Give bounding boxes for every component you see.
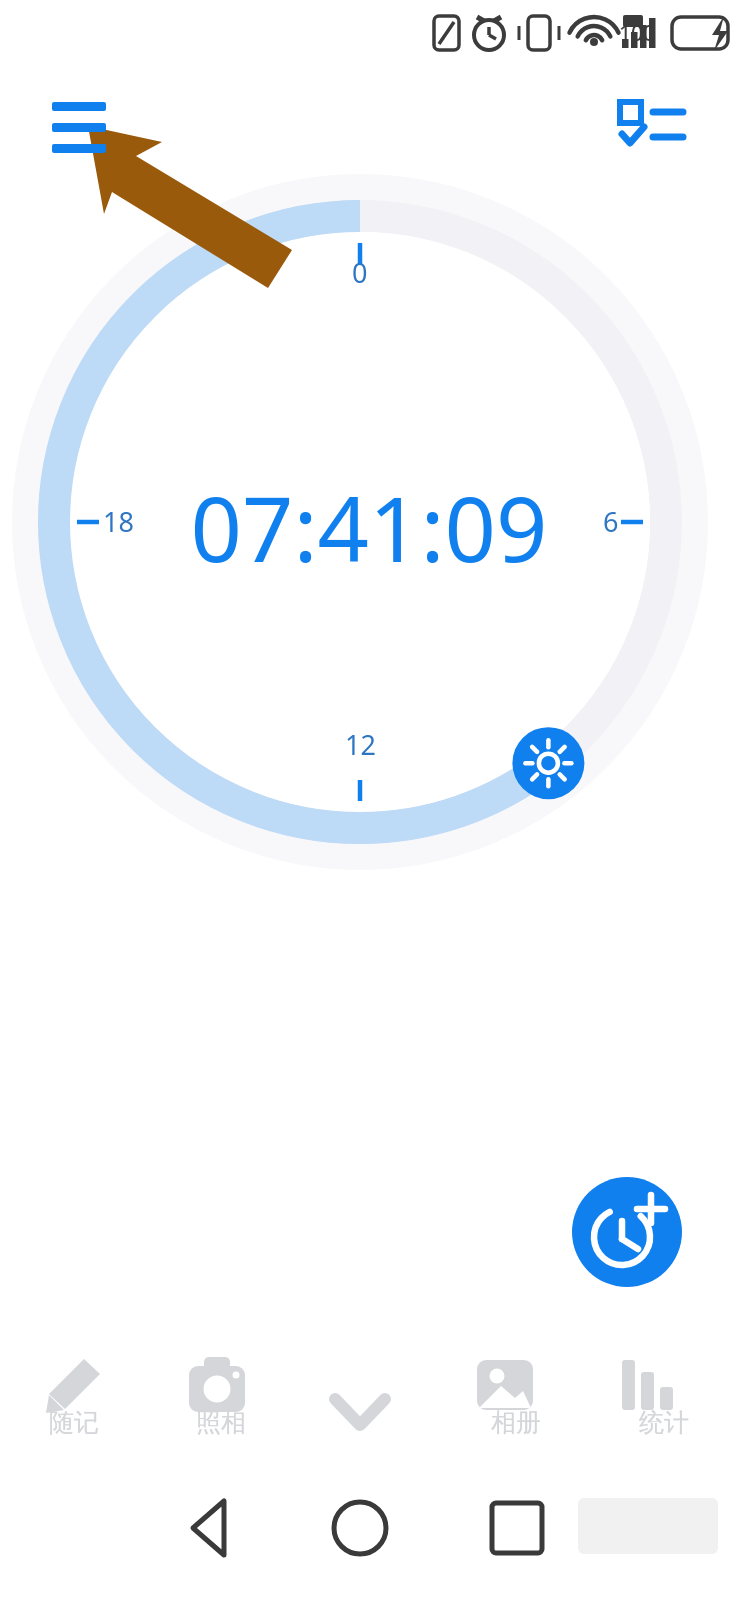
staticText: 18 xyxy=(103,503,134,540)
button[interactable]: Album xyxy=(442,1348,590,1452)
staticText: 12 xyxy=(345,726,376,763)
staticText: 0 xyxy=(352,254,368,291)
button[interactable]: Add timer xyxy=(572,1177,682,1287)
button[interactable]: Statistics xyxy=(590,1348,738,1452)
staticText: 6 xyxy=(603,503,619,540)
button[interactable]: Collapse xyxy=(294,1348,442,1452)
staticText: 随记 xyxy=(49,1407,99,1438)
button[interactable]: Brightness xyxy=(48,616,120,688)
button[interactable]: Task list xyxy=(598,84,662,138)
button[interactable]: Back xyxy=(147,1480,272,1580)
staticText: 07:41:09 xyxy=(0,466,738,589)
button[interactable]: Camera xyxy=(147,1348,294,1452)
button[interactable]: Notes xyxy=(0,1348,147,1452)
button[interactable]: Home xyxy=(292,1480,417,1580)
staticText: 统计 xyxy=(639,1407,689,1438)
button[interactable]: Recents xyxy=(437,1480,562,1580)
button[interactable]: Menu xyxy=(48,84,110,138)
staticText: 相册 xyxy=(491,1407,541,1438)
staticText: 照相 xyxy=(196,1407,246,1438)
staticText: 100 xyxy=(619,19,656,48)
